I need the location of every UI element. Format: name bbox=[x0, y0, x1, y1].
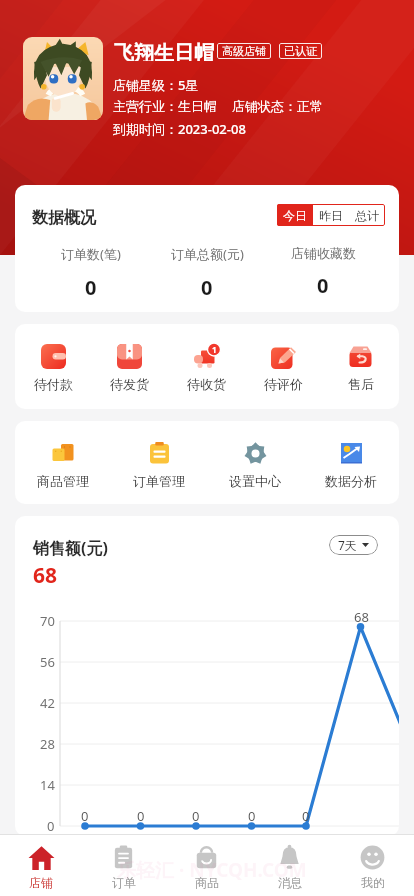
staticText: 待付款 bbox=[34, 376, 73, 392]
button[interactable]: 高级店铺 bbox=[217, 43, 271, 59]
staticText: 数据分析 bbox=[325, 473, 377, 489]
staticText: 高级店铺 bbox=[222, 44, 266, 58]
staticText: 0 bbox=[302, 807, 310, 825]
button[interactable]: 数据分析 bbox=[303, 421, 399, 489]
staticText: 昨日 bbox=[319, 208, 343, 223]
button[interactable]: 今日 bbox=[277, 204, 313, 226]
button[interactable]: 我的 bbox=[331, 835, 414, 896]
staticText: 56 bbox=[40, 653, 55, 671]
staticText: 70 bbox=[40, 612, 55, 630]
staticText: 我的 bbox=[361, 875, 385, 890]
staticText: 订单管理 bbox=[133, 473, 185, 489]
staticText: 数据概况 bbox=[32, 208, 96, 228]
staticText: 店铺星级：5星 bbox=[113, 76, 199, 94]
button[interactable]: 7天 bbox=[329, 535, 378, 555]
staticText: 到期时间：2023-02-08 bbox=[113, 120, 246, 138]
button[interactable]: 店铺收藏数 bbox=[265, 245, 381, 299]
staticText: 售后 bbox=[348, 376, 374, 392]
button[interactable]: 消息 bbox=[248, 835, 331, 896]
staticText: 消息 bbox=[278, 875, 302, 890]
staticText: 0 bbox=[248, 807, 256, 825]
staticText: 0 bbox=[317, 272, 329, 299]
staticText: 商品 bbox=[195, 875, 219, 890]
staticText: 待收货 bbox=[187, 376, 226, 392]
button[interactable]: 1 bbox=[168, 324, 245, 392]
staticText: 42 bbox=[40, 694, 55, 712]
button[interactable]: 已认证 bbox=[279, 43, 322, 59]
staticText: 待发货 bbox=[110, 376, 149, 392]
button[interactable]: 商品 bbox=[165, 835, 248, 896]
staticText: 0 bbox=[137, 807, 145, 825]
staticText: 0 bbox=[81, 807, 89, 825]
staticText: 68 bbox=[354, 608, 369, 626]
button[interactable]: 设置中心 bbox=[207, 421, 303, 489]
button[interactable]: 店铺 bbox=[0, 835, 82, 896]
staticText: 28 bbox=[40, 735, 55, 753]
staticText: 今日 bbox=[283, 208, 307, 223]
button[interactable]: 总计 bbox=[349, 204, 385, 226]
staticText: 乐轻汇 · NYCQH.COM bbox=[117, 857, 307, 883]
button[interactable]: 订单管理 bbox=[111, 421, 207, 489]
button[interactable]: 店铺头像 bbox=[23, 37, 103, 120]
staticText: 店铺收藏数 bbox=[291, 245, 356, 261]
other: 我的 bbox=[359, 844, 386, 871]
button[interactable]: 商品管理 bbox=[15, 421, 111, 489]
staticText: 0 bbox=[85, 274, 97, 301]
button[interactable]: 待评价 bbox=[245, 324, 322, 392]
other: 消息 bbox=[276, 844, 303, 871]
staticText: 设置中心 bbox=[229, 473, 281, 489]
button[interactable]: 售后 bbox=[322, 324, 399, 392]
staticText: 1 bbox=[212, 344, 217, 355]
staticText: 店铺状态：正常 bbox=[232, 98, 323, 114]
staticText: 已认证 bbox=[284, 44, 317, 58]
staticText: 68 bbox=[33, 561, 58, 590]
button[interactable]: 昨日 bbox=[313, 204, 349, 226]
other: 店铺 bbox=[28, 844, 55, 871]
staticText: 7天 bbox=[338, 537, 357, 553]
staticText: 0 bbox=[192, 807, 200, 825]
button[interactable]: 待发货 bbox=[91, 324, 168, 392]
staticText: 总计 bbox=[355, 208, 379, 223]
staticText: 主营行业：生日帽 bbox=[113, 98, 217, 114]
button[interactable]: 待付款 bbox=[15, 324, 91, 392]
staticText: 待评价 bbox=[264, 376, 303, 392]
staticText: 0 bbox=[47, 817, 55, 835]
button[interactable]: 订单数(笔) bbox=[33, 245, 149, 301]
staticText: 订单总额(元) bbox=[171, 245, 244, 263]
button[interactable]: 订单总额(元) bbox=[149, 245, 265, 301]
staticText: 订单 bbox=[112, 875, 136, 890]
staticText: 商品管理 bbox=[37, 473, 89, 489]
staticText: 飞翔生日帽 bbox=[114, 41, 214, 61]
staticText: 销售额(元) bbox=[33, 537, 108, 559]
staticText: 14 bbox=[40, 776, 55, 794]
other: 商品 bbox=[193, 844, 220, 871]
staticText: 订单数(笔) bbox=[61, 245, 121, 263]
staticText: 店铺 bbox=[29, 875, 53, 890]
staticText: 0 bbox=[201, 274, 213, 301]
button[interactable]: 订单 bbox=[82, 835, 165, 896]
other: 订单 bbox=[110, 844, 137, 871]
